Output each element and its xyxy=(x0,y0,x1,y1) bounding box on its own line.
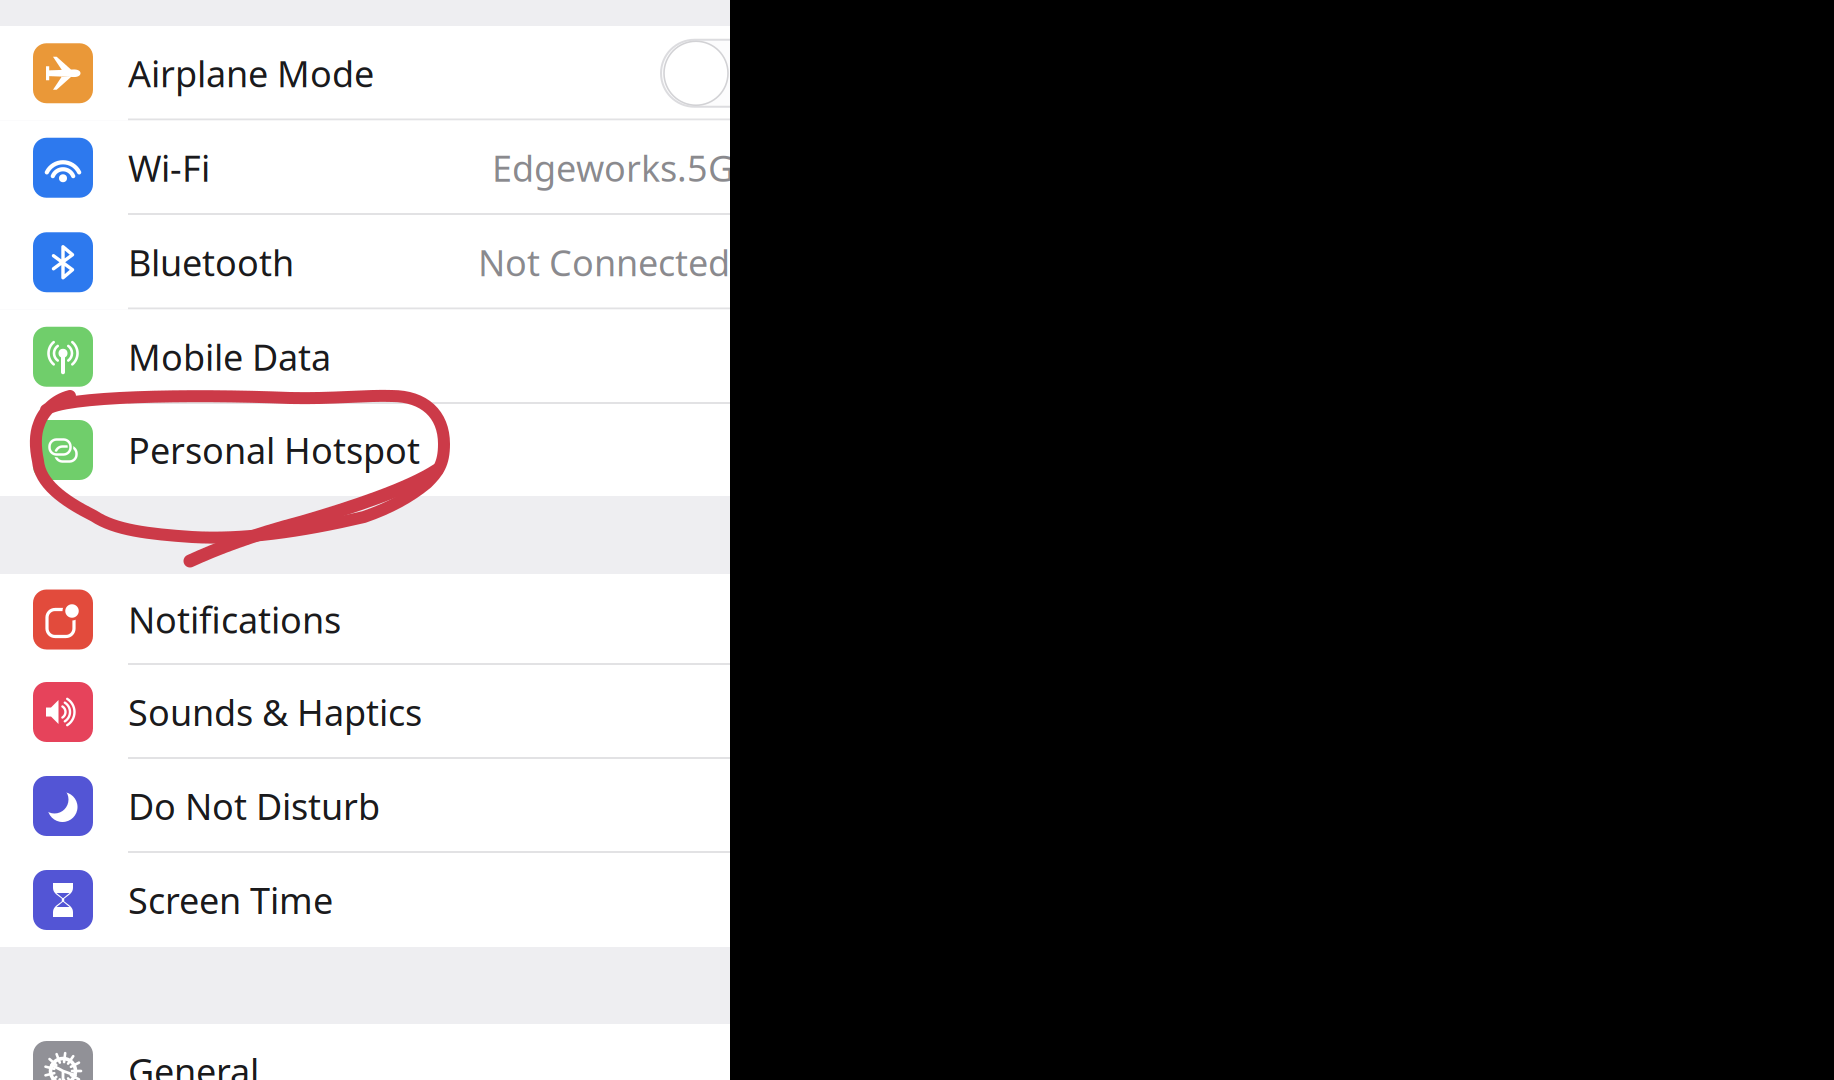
staticText: Edgeworks.5G xyxy=(492,144,734,192)
staticText: Sounds & Haptics xyxy=(128,688,422,736)
staticText: Not Connected xyxy=(478,238,730,286)
button[interactable]: Screen Time xyxy=(0,853,730,947)
staticText: Airplane Mode xyxy=(128,49,374,97)
staticText: Personal Hotspot xyxy=(128,426,420,474)
button[interactable]: Wi-Fi xyxy=(0,120,730,215)
staticText: Screen Time xyxy=(128,876,333,924)
staticText: Do Not Disturb xyxy=(128,782,380,830)
button[interactable]: Airplane Mode xyxy=(0,26,730,120)
staticText: Notifications xyxy=(128,596,341,643)
button[interactable]: Sounds & Haptics xyxy=(0,665,730,759)
button[interactable]: Personal Hotspot xyxy=(0,404,730,496)
button[interactable]: Bluetooth xyxy=(0,215,730,309)
button[interactable]: Do Not Disturb xyxy=(0,759,730,853)
staticText: General xyxy=(128,1047,259,1080)
staticText: Wi-Fi xyxy=(128,144,210,192)
button[interactable]: General xyxy=(0,1024,730,1080)
button[interactable]: Notifications xyxy=(0,574,730,665)
button[interactable]: Mobile Data xyxy=(0,309,730,404)
staticText: Bluetooth xyxy=(128,238,294,286)
staticText: Mobile Data xyxy=(128,333,331,381)
